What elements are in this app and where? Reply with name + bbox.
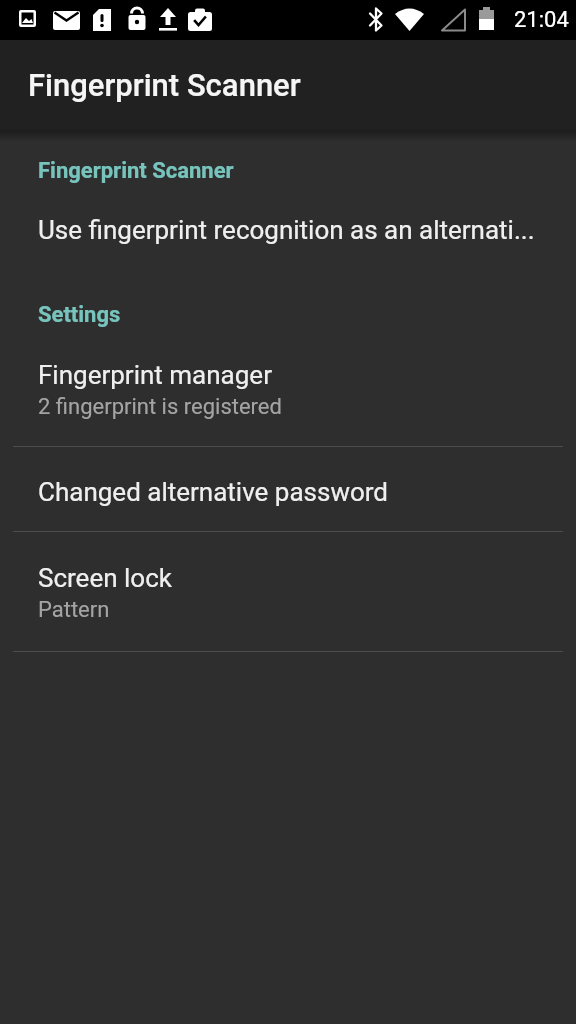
button[interactable]: Screen lock <box>0 532 576 651</box>
staticText: 2 fingerprint is registered <box>38 394 282 420</box>
staticText: Pattern <box>38 597 110 623</box>
staticText: Fingerprint manager <box>38 360 272 390</box>
staticText: Fingerprint Scanner <box>28 67 301 103</box>
button[interactable]: Fingerprint manager <box>0 347 576 446</box>
staticText: 21:04 <box>514 7 569 33</box>
staticText: Changed alternative password <box>38 477 388 507</box>
staticText: Screen lock <box>38 563 172 593</box>
staticText: Fingerprint Scanner <box>38 158 234 184</box>
staticText: Settings <box>38 302 121 328</box>
button[interactable]: Changed alternative password <box>0 447 576 531</box>
staticText: Use fingerprint recognition as an altern… <box>38 215 535 245</box>
button[interactable]: Use fingerprint recognition as an altern… <box>0 196 576 264</box>
